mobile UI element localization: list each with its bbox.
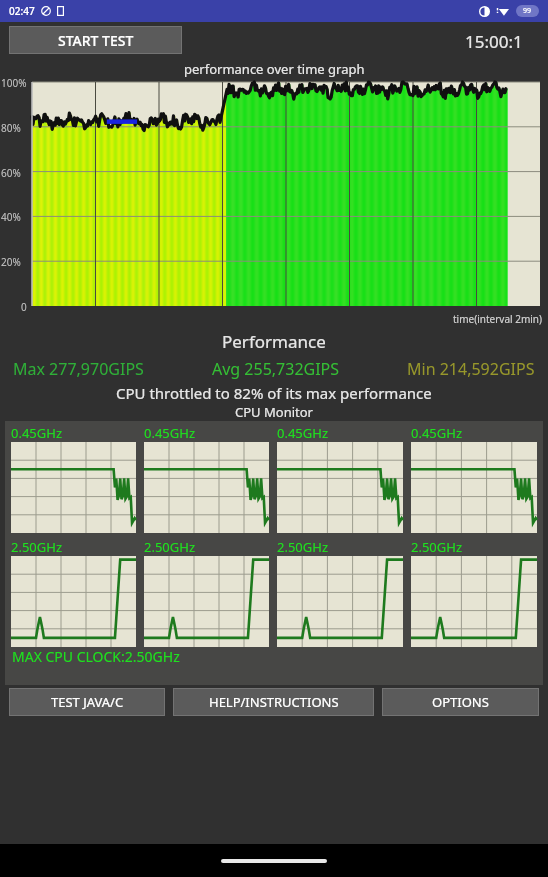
staticText: 0.45GHz <box>411 424 462 442</box>
button[interactable]: START TEST <box>10 27 181 53</box>
staticText: 2.50GHz <box>277 538 328 556</box>
staticText: time(interval 2min) <box>453 312 543 326</box>
staticText: 2.50GHz <box>144 538 195 556</box>
staticText: 20% <box>1 255 21 269</box>
staticText: TEST JAVA/C <box>51 693 124 711</box>
staticText: 100% <box>1 76 27 90</box>
staticText: CPU throttled to 82% of its max performa… <box>116 383 432 403</box>
staticText: Min 214,592GIPS <box>407 358 535 380</box>
staticText: 0.45GHz <box>144 424 195 442</box>
staticText: 0 <box>21 300 27 314</box>
button[interactable]: HELP/INSTRUCTIONS <box>174 689 373 715</box>
staticText: HELP/INSTRUCTIONS <box>209 693 339 711</box>
staticText: OPTIONS <box>432 693 489 711</box>
staticText: CPU Monitor <box>0 403 548 421</box>
staticText: 02:47 <box>9 4 35 18</box>
staticText: 60% <box>1 166 21 180</box>
staticText: START TEST <box>58 31 134 50</box>
button[interactable]: TEST JAVA/C <box>10 689 164 715</box>
staticText: 2.50GHz <box>11 538 62 556</box>
staticText: 0.45GHz <box>11 424 62 442</box>
staticText: 15:00:1 <box>465 30 523 53</box>
staticText: performance over time graph <box>184 60 365 78</box>
button[interactable]: OPTIONS <box>383 689 538 715</box>
staticText: 40% <box>1 210 21 224</box>
staticText: Performance <box>222 330 326 353</box>
staticText: 99 <box>523 6 532 16</box>
staticText: Avg 255,732GIPS <box>212 358 340 380</box>
staticText: MAX CPU CLOCK:2.50GHz <box>12 647 180 666</box>
staticText: 80% <box>1 121 21 135</box>
staticText: 0.45GHz <box>277 424 328 442</box>
staticText: Max 277,970GIPS <box>13 358 144 380</box>
staticText: 2.50GHz <box>411 538 462 556</box>
